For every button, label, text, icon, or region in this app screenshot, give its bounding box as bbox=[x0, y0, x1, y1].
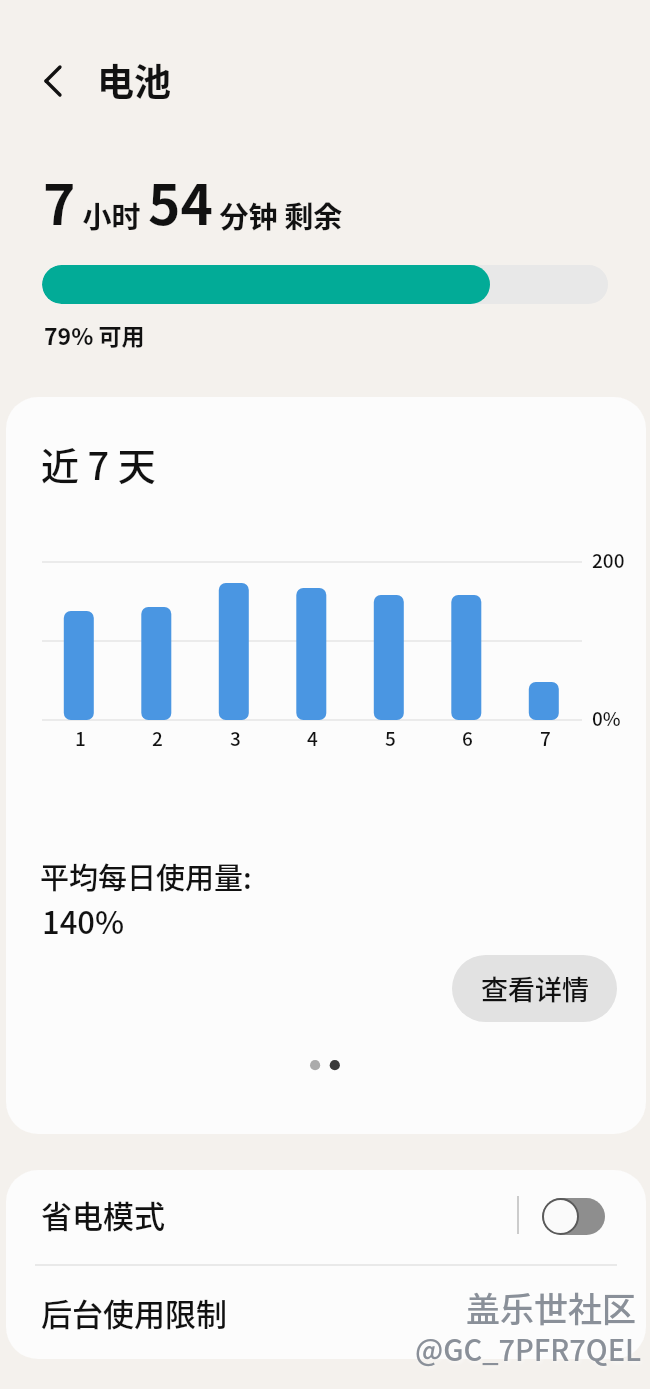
staticText: 200 bbox=[592, 546, 625, 574]
button[interactable]: 后台使用限制 bbox=[6, 1266, 646, 1359]
staticText: 5 bbox=[385, 724, 396, 752]
staticText: 查看详情 bbox=[481, 969, 589, 1008]
staticText: 7 bbox=[43, 161, 76, 241]
staticText: 140% bbox=[42, 898, 125, 943]
staticText: 省电模式 bbox=[41, 1192, 165, 1237]
staticText: 平均每日使用量: bbox=[40, 855, 252, 897]
button[interactable]: 查看详情 bbox=[452, 955, 617, 1022]
staticText: 后台使用限制 bbox=[41, 1290, 227, 1335]
button[interactable]: Back bbox=[30, 58, 76, 104]
staticText: 小时 bbox=[76, 194, 148, 236]
staticText: 2 bbox=[152, 724, 163, 752]
staticText: 近 7 天 bbox=[41, 436, 156, 491]
staticText: 电池 bbox=[97, 53, 171, 107]
staticText: 54 bbox=[148, 161, 213, 241]
staticText: 6 bbox=[462, 724, 473, 752]
staticText: 79% 可用 bbox=[44, 318, 145, 351]
button[interactable]: Power saving mode toggle bbox=[542, 1198, 605, 1235]
staticText: 分钟 剩余 bbox=[213, 194, 343, 236]
staticText: 4 bbox=[307, 724, 318, 752]
staticText: 3 bbox=[230, 724, 241, 752]
staticText: 盖乐世社区 bbox=[466, 1283, 636, 1332]
staticText: 1 bbox=[75, 724, 86, 752]
staticText: 0% bbox=[592, 704, 621, 732]
button[interactable]: 省电模式 bbox=[6, 1170, 646, 1264]
staticText: 7 bbox=[540, 724, 551, 752]
staticText: @GC_7PFR7QEL bbox=[415, 1327, 642, 1369]
